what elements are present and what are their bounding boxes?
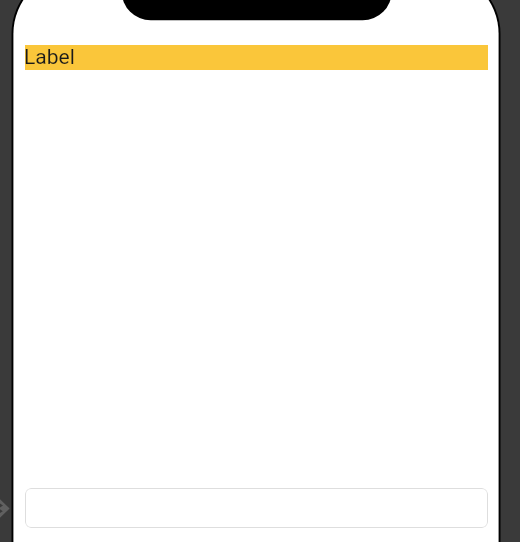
staticText: Label — [24, 45, 75, 70]
button[interactable]: Label — [25, 45, 488, 70]
button[interactable] — [25, 488, 488, 528]
button[interactable]: Expand panel — [0, 498, 11, 519]
